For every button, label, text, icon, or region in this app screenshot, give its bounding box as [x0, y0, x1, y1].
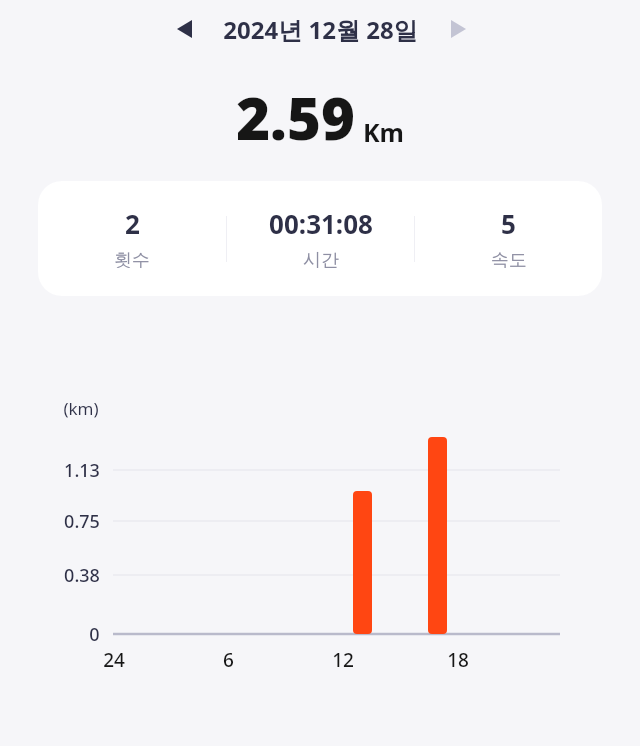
staticText: 2024년 12월 28일 — [223, 13, 418, 46]
button[interactable]: 2024년 12월 28일 — [223, 13, 418, 46]
staticText: 속도 — [491, 249, 527, 272]
staticText: 12 — [332, 647, 354, 673]
button[interactable]: 2 — [38, 181, 226, 296]
staticText: 2.59 — [236, 78, 355, 157]
staticText: 6 — [223, 647, 234, 673]
staticText: 0.75 — [64, 509, 100, 534]
staticText: 0.38 — [64, 563, 100, 588]
staticText: 00:31:08 — [269, 206, 373, 241]
staticText: 0 — [89, 622, 100, 647]
button[interactable]: 5 — [415, 181, 602, 296]
staticText: 5 — [501, 206, 516, 241]
staticText: 횟수 — [114, 249, 150, 272]
staticText: 18 — [447, 647, 469, 673]
button[interactable]: Previous day — [164, 9, 204, 49]
staticText: 24 — [103, 647, 125, 673]
staticText: Km — [363, 115, 404, 149]
button[interactable]: 2 — [38, 181, 602, 296]
button[interactable]: Next day — [438, 9, 478, 49]
staticText: 2 — [125, 206, 140, 241]
staticText: (km) — [63, 397, 99, 420]
button[interactable]: 00:31:08 — [227, 181, 414, 296]
staticText: 시간 — [303, 249, 339, 272]
staticText: 1.13 — [64, 458, 100, 483]
